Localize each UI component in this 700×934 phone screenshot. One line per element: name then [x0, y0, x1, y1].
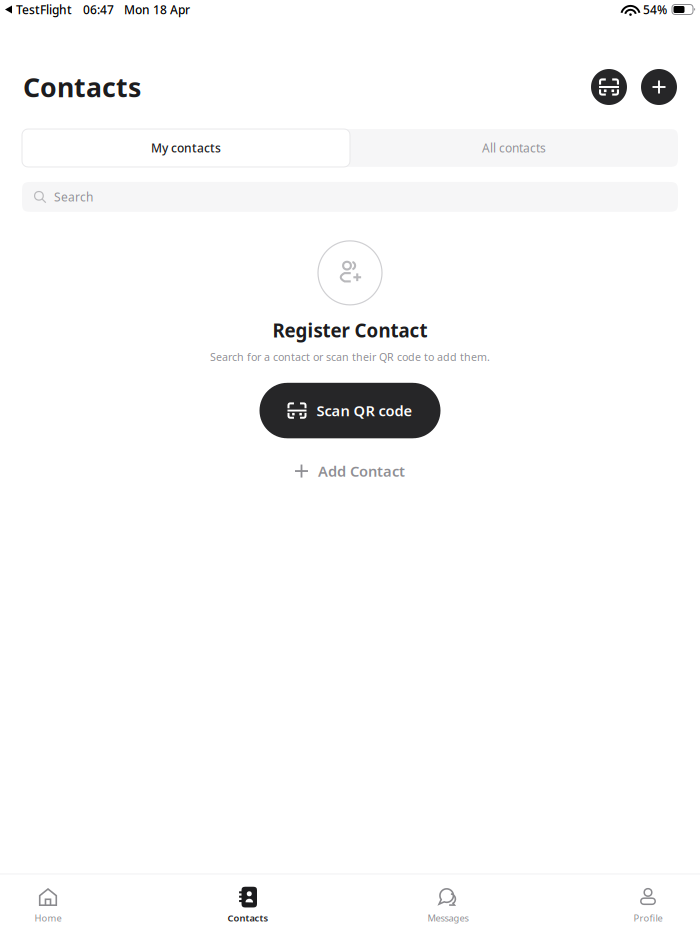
staticText: Messages: [427, 912, 468, 924]
staticText: Contacts: [23, 69, 141, 105]
button[interactable]: Scan QR code: [259, 383, 440, 438]
staticText: Contacts: [227, 912, 268, 924]
button[interactable]: Contacts: [200, 875, 296, 934]
staticText: TestFlight: [16, 1, 72, 17]
button[interactable]: Messages: [400, 875, 496, 934]
staticText: Profile: [633, 912, 662, 924]
staticText: 54%: [643, 1, 667, 17]
staticText: Mon 18 Apr: [124, 1, 190, 17]
button[interactable]: All contacts: [350, 129, 678, 167]
staticText: 06:47: [83, 1, 114, 17]
button[interactable]: Home: [0, 875, 96, 934]
staticText: Search: [54, 189, 93, 205]
staticText: All contacts: [482, 140, 546, 156]
staticText: Register Contact: [272, 318, 427, 343]
staticText: Search for a contact or scan their QR co…: [210, 350, 490, 364]
staticText: Home: [34, 912, 61, 924]
staticText: Scan QR code: [316, 401, 412, 420]
staticText: Add Contact: [318, 461, 405, 481]
button[interactable]: Scan QR code: [591, 69, 627, 105]
button[interactable]: My contacts: [22, 129, 350, 167]
button[interactable]: Profile: [600, 875, 696, 934]
staticText: My contacts: [151, 140, 221, 156]
button[interactable]: Add Contact: [279, 451, 421, 491]
button[interactable]: Add contact: [627, 69, 677, 105]
